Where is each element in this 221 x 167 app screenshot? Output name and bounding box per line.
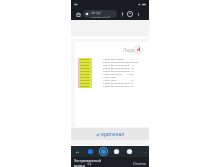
staticText: 0000 000 [80,61,90,64]
button[interactable]: sh.ly/contnuty1 [83,10,117,18]
staticText: 4 [132,76,134,79]
staticText: 17 [131,70,134,73]
staticText: 16 [131,79,134,82]
staticText: 10 200 [127,73,134,76]
staticText: 8 [132,64,134,67]
button[interactable]: Отмена [133,161,147,166]
button[interactable]: Home [74,10,82,18]
staticText: 0000 000 [80,85,90,88]
staticText: 0000 000 [80,76,90,79]
button[interactable]: Expand [74,149,80,155]
staticText: Сумма без налогов итого [103,67,130,70]
staticText: выход [74,163,85,167]
staticText: Отмена [133,161,147,166]
staticText: 12 [131,58,134,61]
staticText: 0000 000 [80,64,90,67]
staticText: 0000 000 [80,58,90,61]
staticText: 24 [131,67,134,70]
staticText: 0000 000 [80,67,90,70]
staticText: 0000 000 [80,79,90,82]
staticText: Сумма без налогов [103,58,124,61]
staticText: Сумма без налогов начисленная [103,61,138,64]
staticText: Сумма без налогов итого [103,70,130,73]
button[interactable]: Account [126,10,134,18]
staticText: Сумма без налогов итого [103,82,130,85]
staticText: Лидер [123,47,137,53]
button[interactable]: Voice search [118,10,126,18]
staticText: sh.ly/contnuty1 [91,10,117,18]
staticText: Итого, налог [103,76,117,79]
button[interactable]: оригинал [93,130,128,139]
staticText: Экстремальный [74,158,102,163]
button[interactable]: Share target [99,147,108,156]
staticText: Итого, налог [103,79,117,82]
staticText: Неделя месяц год [103,73,123,76]
button[interactable]: More options [134,10,142,18]
button[interactable]: More [143,150,147,154]
button[interactable]: Share target [125,147,134,156]
staticText: 0000 000 [80,73,90,76]
staticText: 0000 000 [80,70,90,73]
staticText: Сумма без налогов итого [103,64,130,67]
staticText: 33 [131,85,134,88]
staticText: оригинал [101,131,125,138]
staticText: 0000 000 [80,82,90,85]
staticText: 71 [131,82,134,85]
staticText: Сумма без налогов итого [103,85,130,88]
button[interactable]: Share target [86,147,95,156]
button[interactable]: Share target [112,147,121,156]
